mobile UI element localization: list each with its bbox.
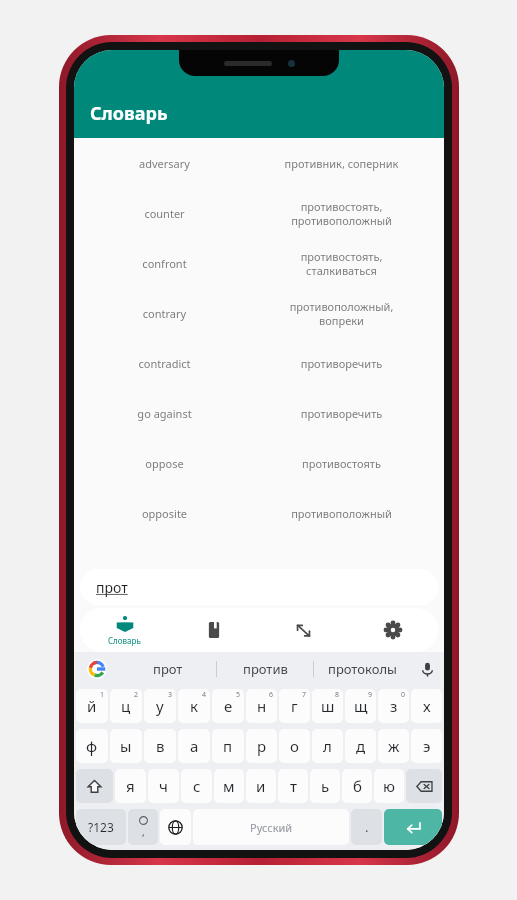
staticText: н bbox=[257, 696, 267, 716]
button[interactable]: go against bbox=[74, 388, 444, 438]
button[interactable]: ?123 bbox=[76, 809, 126, 845]
button[interactable]: в bbox=[144, 729, 176, 763]
button[interactable]: и bbox=[246, 769, 276, 803]
button[interactable]: ы bbox=[110, 729, 142, 763]
staticText: против bbox=[243, 660, 288, 678]
button[interactable]: протоколы bbox=[314, 652, 410, 686]
button[interactable]: opposite bbox=[74, 488, 444, 538]
staticText: й bbox=[87, 696, 97, 716]
staticText: ж bbox=[388, 736, 400, 756]
button[interactable]: ю bbox=[374, 769, 404, 803]
button[interactable]: р bbox=[246, 729, 277, 763]
button[interactable]: Эмодзи bbox=[128, 809, 158, 845]
staticText: а bbox=[190, 736, 199, 756]
button[interactable]: с bbox=[181, 769, 212, 803]
staticText: go against bbox=[82, 406, 247, 421]
button[interactable]: confront bbox=[74, 238, 444, 288]
button[interactable]: к bbox=[178, 689, 210, 723]
staticText: oppose bbox=[82, 456, 247, 471]
button[interactable]: х bbox=[411, 689, 442, 723]
staticText: ц bbox=[121, 696, 131, 716]
staticText: ?123 bbox=[88, 819, 114, 835]
button[interactable]: щ bbox=[345, 689, 376, 723]
staticText: и bbox=[256, 776, 266, 796]
button[interactable]: Голосовой ввод bbox=[410, 652, 444, 686]
staticText: confront bbox=[82, 256, 247, 271]
staticText: counter bbox=[82, 206, 247, 221]
staticText: ф bbox=[86, 736, 98, 756]
button[interactable]: у bbox=[144, 689, 176, 723]
button[interactable]: ц bbox=[110, 689, 142, 723]
staticText: е bbox=[224, 696, 233, 716]
button[interactable]: Ввод bbox=[384, 809, 442, 845]
button[interactable]: Shift bbox=[76, 769, 113, 803]
staticText: 5 bbox=[236, 690, 241, 700]
button[interactable]: й bbox=[76, 689, 108, 723]
staticText: 9 bbox=[368, 690, 373, 700]
button[interactable]: ж bbox=[378, 729, 409, 763]
staticText: contrary bbox=[82, 306, 247, 321]
button[interactable]: г bbox=[279, 689, 310, 723]
staticText: 7 bbox=[302, 690, 307, 700]
staticText: ю bbox=[383, 776, 395, 796]
button[interactable]: ь bbox=[310, 769, 340, 803]
staticText: Русский bbox=[250, 820, 293, 835]
button[interactable]: т bbox=[278, 769, 308, 803]
staticText: 2 bbox=[134, 690, 139, 700]
staticText: прот bbox=[153, 660, 183, 678]
button[interactable]: Удалить bbox=[406, 769, 442, 803]
staticText: противоположный bbox=[247, 506, 436, 521]
staticText: в bbox=[156, 736, 165, 756]
staticText: ч bbox=[159, 776, 168, 796]
staticText: противоречить bbox=[247, 356, 436, 371]
button[interactable]: . bbox=[351, 809, 382, 845]
staticText: opposite bbox=[82, 506, 247, 521]
staticText: протоколы bbox=[328, 660, 397, 678]
button[interactable]: contrary bbox=[74, 288, 444, 338]
staticText: б bbox=[353, 776, 362, 796]
button[interactable]: ч bbox=[148, 769, 179, 803]
button[interactable]: Русский bbox=[193, 809, 349, 845]
button[interactable]: п bbox=[212, 729, 244, 763]
button[interactable]: з bbox=[378, 689, 409, 723]
staticText: , bbox=[142, 825, 145, 839]
button[interactable]: Учебник bbox=[169, 608, 258, 652]
staticText: т bbox=[290, 776, 297, 796]
button[interactable]: против bbox=[217, 652, 313, 686]
staticText: противоположный, вопреки bbox=[247, 299, 436, 328]
button[interactable]: прот bbox=[80, 569, 438, 605]
button[interactable]: н bbox=[246, 689, 277, 723]
button[interactable]: е bbox=[212, 689, 244, 723]
staticText: 8 bbox=[335, 690, 340, 700]
button[interactable]: м bbox=[214, 769, 244, 803]
button[interactable]: adversary bbox=[74, 138, 444, 188]
button[interactable]: прот bbox=[120, 652, 216, 686]
staticText: Словарь bbox=[90, 101, 168, 126]
staticText: Словарь bbox=[108, 635, 141, 646]
button[interactable]: Настройки bbox=[348, 608, 438, 652]
staticText: э bbox=[423, 736, 431, 756]
button[interactable]: я bbox=[115, 769, 146, 803]
button[interactable]: а bbox=[178, 729, 210, 763]
button[interactable]: counter bbox=[74, 188, 444, 238]
staticText: contradict bbox=[82, 356, 247, 371]
staticText: 4 bbox=[202, 690, 207, 700]
button[interactable]: ш bbox=[312, 689, 343, 723]
staticText: 1 bbox=[100, 690, 105, 700]
button[interactable]: Тренировка bbox=[258, 608, 348, 652]
button[interactable]: э bbox=[411, 729, 442, 763]
staticText: х bbox=[423, 696, 431, 716]
button[interactable]: Сменить язык bbox=[160, 809, 191, 845]
button[interactable]: contradict bbox=[74, 338, 444, 388]
button[interactable]: ф bbox=[76, 729, 108, 763]
button[interactable]: Google bbox=[74, 652, 120, 686]
staticText: у bbox=[156, 696, 164, 716]
button[interactable]: л bbox=[312, 729, 343, 763]
button[interactable]: Словарь bbox=[80, 608, 169, 652]
staticText: противник, соперник bbox=[247, 156, 436, 171]
staticText: 6 bbox=[269, 690, 274, 700]
button[interactable]: б bbox=[342, 769, 372, 803]
button[interactable]: о bbox=[279, 729, 310, 763]
button[interactable]: oppose bbox=[74, 438, 444, 488]
button[interactable]: д bbox=[345, 729, 376, 763]
